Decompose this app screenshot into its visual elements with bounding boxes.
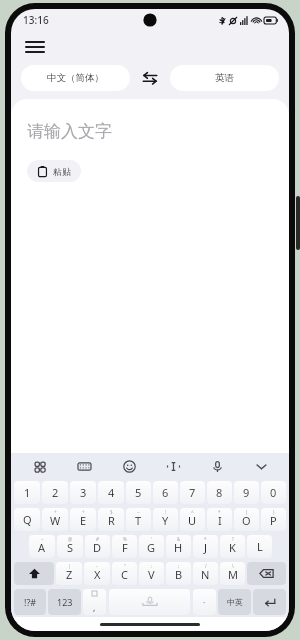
staticText: 8: [216, 485, 223, 500]
staticText: Y: [162, 513, 169, 528]
button[interactable]: Hide keyboard: [239, 453, 283, 479]
button[interactable]: Swap languages: [130, 63, 170, 93]
staticText: ^: [191, 509, 194, 515]
staticText: -: [96, 563, 98, 569]
button[interactable]: Text edit: [151, 453, 195, 479]
button[interactable]: ': [139, 535, 164, 558]
button[interactable]: :: [139, 562, 164, 585]
button[interactable]: Menu: [19, 31, 51, 63]
button[interactable]: Voice input: [195, 453, 239, 479]
button[interactable]: Period: [193, 589, 216, 615]
staticText: /: [205, 563, 207, 569]
staticText: G: [147, 540, 156, 555]
button[interactable]: $: [98, 508, 124, 531]
staticText: 粘贴: [53, 166, 71, 177]
button[interactable]: ~: [29, 535, 55, 558]
staticText: 2: [52, 485, 59, 500]
staticText: 9: [243, 485, 250, 500]
staticText: Z: [66, 567, 73, 582]
button[interactable]: 3: [70, 481, 96, 504]
staticText: |: [68, 563, 71, 569]
button[interactable]: ~: [126, 508, 151, 531]
button[interactable]: Apps: [17, 453, 62, 479]
staticText: X: [94, 567, 101, 582]
staticText: ~: [137, 509, 140, 515]
staticText: 请输入文字: [27, 121, 112, 142]
button[interactable]: Q: [14, 508, 40, 531]
button[interactable]: Emoji: [107, 453, 151, 479]
staticText: F: [122, 540, 128, 555]
staticText: M: [228, 567, 238, 582]
button[interactable]: Backspace: [247, 562, 286, 585]
button[interactable]: 9: [234, 481, 259, 504]
button[interactable]: /: [193, 562, 218, 585]
staticText: C: [121, 567, 128, 582]
staticText: P: [270, 513, 277, 528]
button[interactable]: L: [247, 535, 272, 558]
button[interactable]: @: [57, 535, 83, 558]
staticText: ?: [232, 536, 234, 542]
button[interactable]: \: [220, 562, 245, 585]
staticText: L: [257, 539, 263, 554]
staticText: 3: [80, 485, 87, 500]
button[interactable]: ^: [180, 508, 205, 531]
button[interactable]: (: [234, 508, 259, 531]
staticText: 中文（简体）: [47, 72, 104, 84]
button[interactable]: &: [166, 535, 191, 558]
button[interactable]: 4: [98, 481, 124, 504]
button[interactable]: 7: [180, 481, 205, 504]
staticText: %: [123, 536, 127, 542]
staticText: 6: [162, 485, 169, 500]
staticText: 中英: [227, 597, 243, 607]
button[interactable]: ): [261, 508, 286, 531]
staticText: ,: [93, 601, 96, 613]
button[interactable]: ": [112, 562, 137, 585]
button[interactable]: 1: [14, 481, 40, 504]
button[interactable]: ?: [220, 535, 245, 558]
button[interactable]: -: [84, 562, 110, 585]
staticText: ~: [41, 536, 44, 542]
button[interactable]: *: [207, 508, 232, 531]
button[interactable]: 粘贴: [27, 160, 81, 182]
button[interactable]: 0: [261, 481, 286, 504]
button[interactable]: +: [42, 508, 68, 531]
staticText: U: [188, 513, 197, 528]
button[interactable]: *: [193, 535, 218, 558]
button[interactable]: Enter: [253, 589, 286, 615]
button[interactable]: ÷: [70, 508, 96, 531]
button[interactable]: !?#: [14, 589, 46, 615]
button[interactable]: 8: [207, 481, 232, 504]
staticText: $: [110, 509, 113, 515]
staticText: D: [93, 540, 102, 555]
button[interactable]: 123: [48, 589, 81, 615]
button[interactable]: %: [112, 535, 137, 558]
staticText: !?#: [24, 596, 37, 608]
button[interactable]: 6: [153, 481, 178, 504]
staticText: Q: [23, 512, 32, 527]
button[interactable]: Comma: [83, 589, 106, 615]
button[interactable]: 2: [42, 481, 68, 504]
button[interactable]: 英语: [170, 65, 279, 91]
staticText: I: [218, 513, 222, 528]
button[interactable]: Shift: [14, 562, 54, 585]
staticText: ;: [178, 563, 180, 569]
button[interactable]: !: [153, 508, 178, 531]
staticText: A: [38, 540, 46, 555]
staticText: 0: [270, 485, 277, 500]
staticText: ): [273, 509, 275, 515]
staticText: +: [54, 509, 57, 515]
button[interactable]: 中文（简体）: [21, 65, 130, 91]
button[interactable]: 中英: [218, 589, 251, 615]
staticText: ': [151, 536, 153, 542]
button[interactable]: #: [85, 535, 110, 558]
button[interactable]: |: [56, 562, 82, 585]
button[interactable]: Keyboard layout: [62, 453, 107, 479]
button[interactable]: Space: [109, 589, 190, 615]
button[interactable]: 5: [126, 481, 151, 504]
staticText: *: [204, 536, 207, 542]
staticText: :: [151, 563, 153, 569]
staticText: O: [242, 513, 251, 528]
button[interactable]: ;: [166, 562, 191, 585]
staticText: T: [135, 513, 142, 528]
staticText: *: [218, 509, 221, 515]
